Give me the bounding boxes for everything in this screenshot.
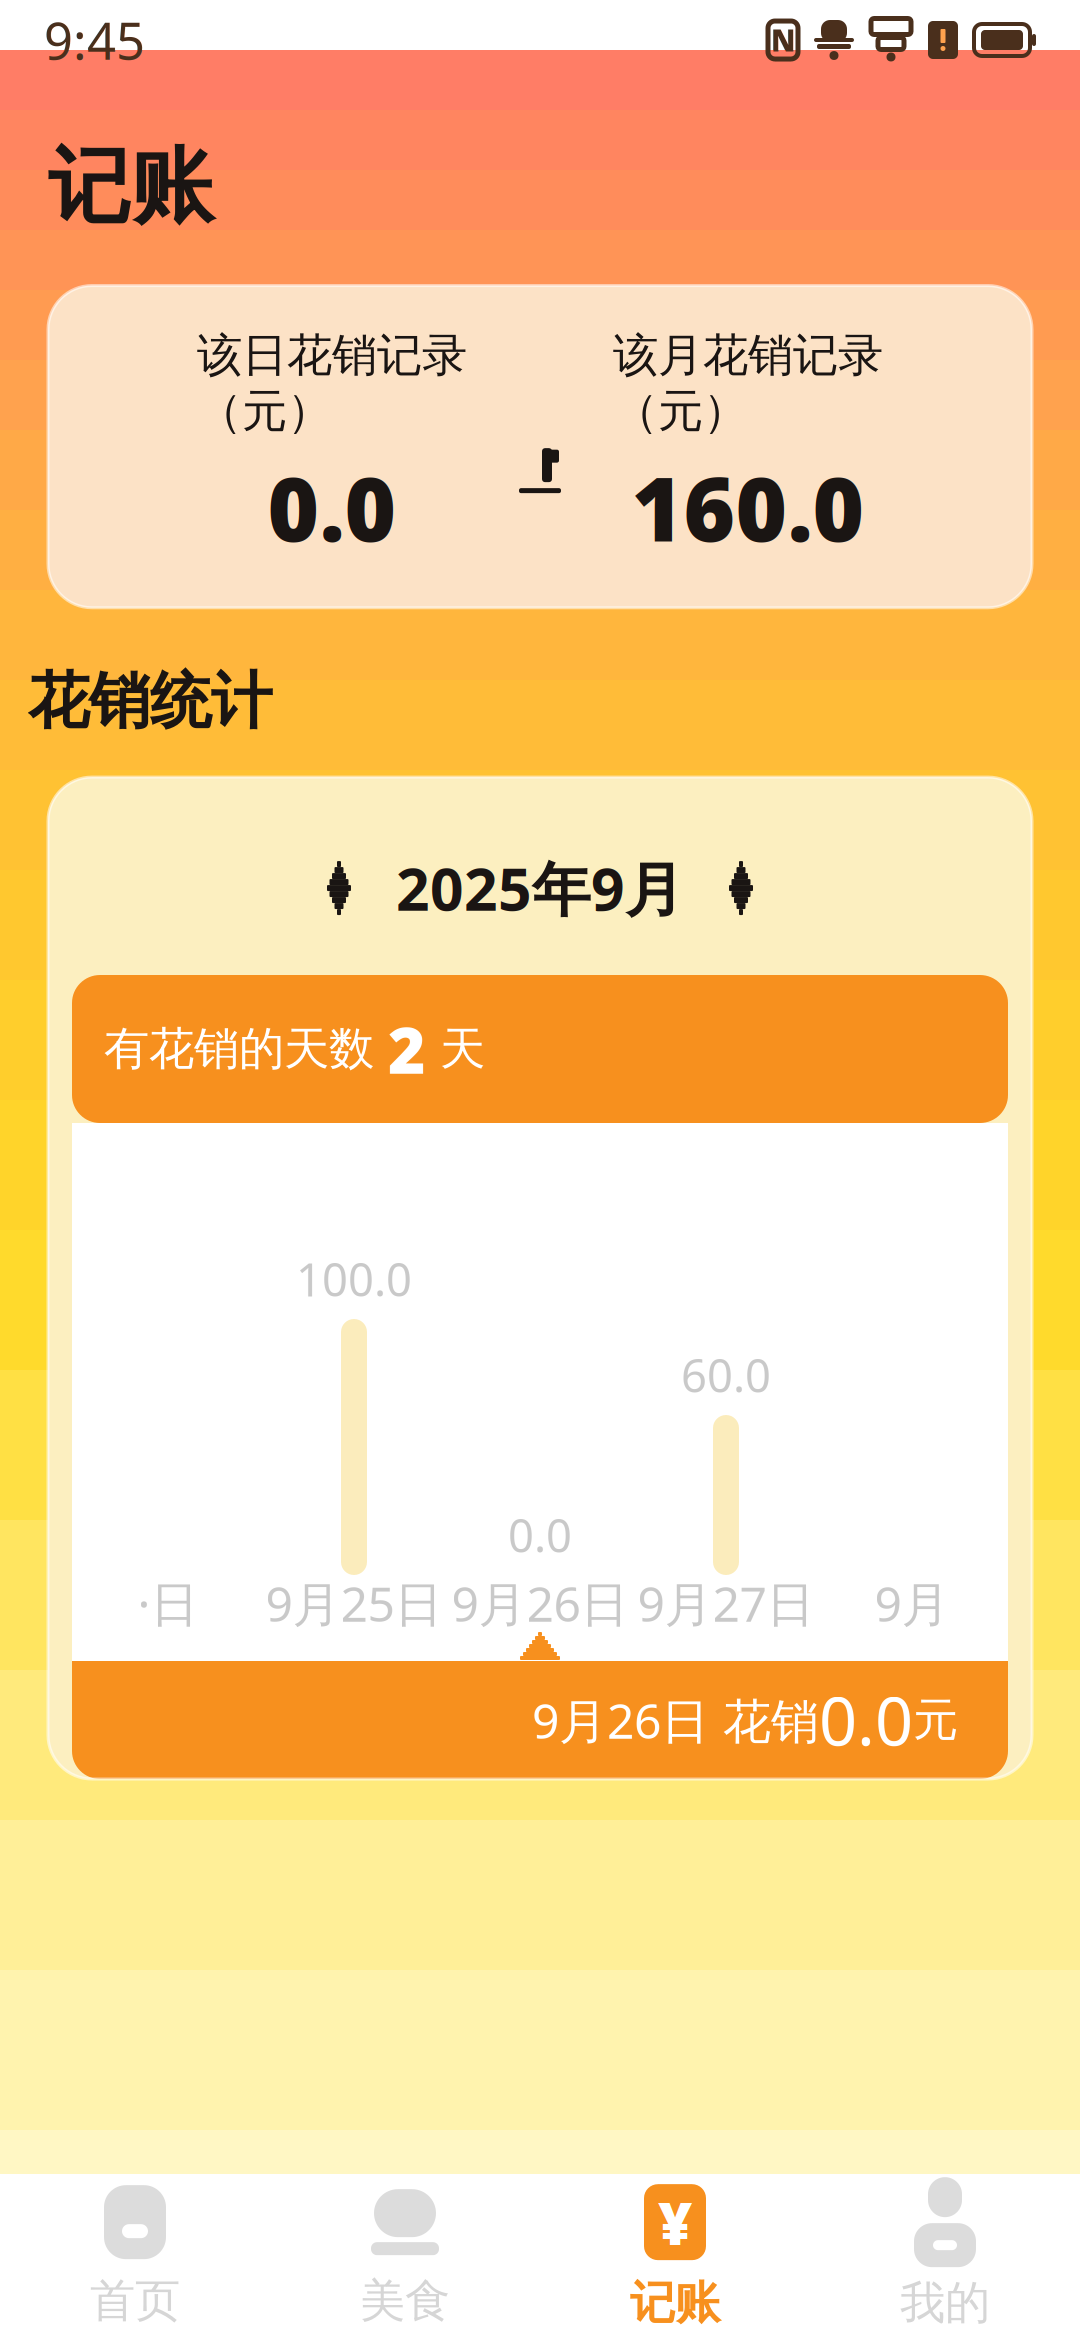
staticText: 有花销的天数: [104, 1021, 388, 1077]
staticText: 元: [913, 1692, 958, 1748]
staticText: 花销统计: [28, 664, 272, 739]
staticText: 0.0: [508, 1505, 572, 1565]
staticText: 9:45: [44, 6, 145, 74]
staticText: 首页: [90, 2273, 180, 2329]
button[interactable]: 我的: [810, 2174, 1080, 2340]
staticText: 60.0: [681, 1345, 771, 1405]
staticText: N: [771, 20, 795, 59]
button[interactable]: 首页: [0, 2174, 270, 2340]
staticText: 9月27日: [637, 1571, 814, 1635]
staticText: ·日: [137, 1571, 198, 1635]
staticText: 0.0: [267, 449, 396, 566]
button[interactable]: 美食: [270, 2174, 540, 2340]
staticText: 0.0: [819, 1676, 913, 1764]
staticText: 天: [426, 1021, 485, 1077]
staticText: 我的: [900, 2275, 990, 2331]
staticText: 9月26日 花销: [532, 1688, 819, 1752]
staticText: 记账: [630, 2275, 720, 2331]
staticText: 美食: [360, 2273, 450, 2329]
button[interactable]: 编辑该日花销: [497, 387, 583, 507]
staticText: 9月25日: [265, 1571, 442, 1635]
staticText: 该月花销记录（元）: [613, 327, 883, 439]
staticText: 该日花销记录（元）: [197, 327, 467, 439]
button[interactable]: 下一月: [710, 855, 766, 921]
staticText: 2025年9月: [396, 849, 684, 927]
staticText: ¥: [658, 2183, 692, 2261]
staticText: 9月26日: [451, 1571, 628, 1635]
staticText: 2: [388, 1006, 426, 1091]
staticText: 160.0: [631, 449, 864, 566]
button[interactable]: 上一月: [314, 855, 370, 921]
staticText: 9月: [874, 1571, 949, 1635]
staticText: 100.0: [296, 1249, 412, 1309]
staticText: 记账: [48, 136, 214, 237]
button[interactable]: ¥: [540, 2174, 810, 2340]
